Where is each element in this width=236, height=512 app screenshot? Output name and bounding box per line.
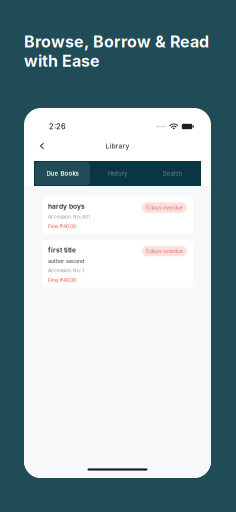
button[interactable]: Search [145, 162, 200, 185]
staticText: Accession. No: 1 [48, 268, 84, 273]
staticText: Fine: ₹40.00 [48, 277, 76, 283]
staticText: 5 days overdue [146, 248, 183, 254]
staticText: author second [48, 258, 84, 264]
button[interactable]: History [90, 162, 145, 185]
button[interactable]: Back [35, 139, 49, 153]
staticText: hardy boys [48, 202, 85, 210]
staticText: Search [162, 170, 182, 177]
staticText: Fine: ₹40.00 [48, 223, 76, 229]
staticText: History [108, 170, 127, 177]
staticText: 5 days overdue [146, 205, 183, 211]
staticText: first title [48, 246, 76, 254]
button[interactable]: first title [42, 240, 193, 288]
staticText: Accession. No: 401 [48, 214, 90, 220]
staticText: Browse, Borrow & Read with Ease [24, 32, 209, 71]
staticText: Library [105, 142, 129, 150]
button[interactable]: Due Books [35, 162, 90, 185]
staticText: Due Books [46, 170, 78, 177]
button[interactable]: hardy boys [42, 196, 193, 234]
staticText: 2:26 [49, 122, 66, 131]
